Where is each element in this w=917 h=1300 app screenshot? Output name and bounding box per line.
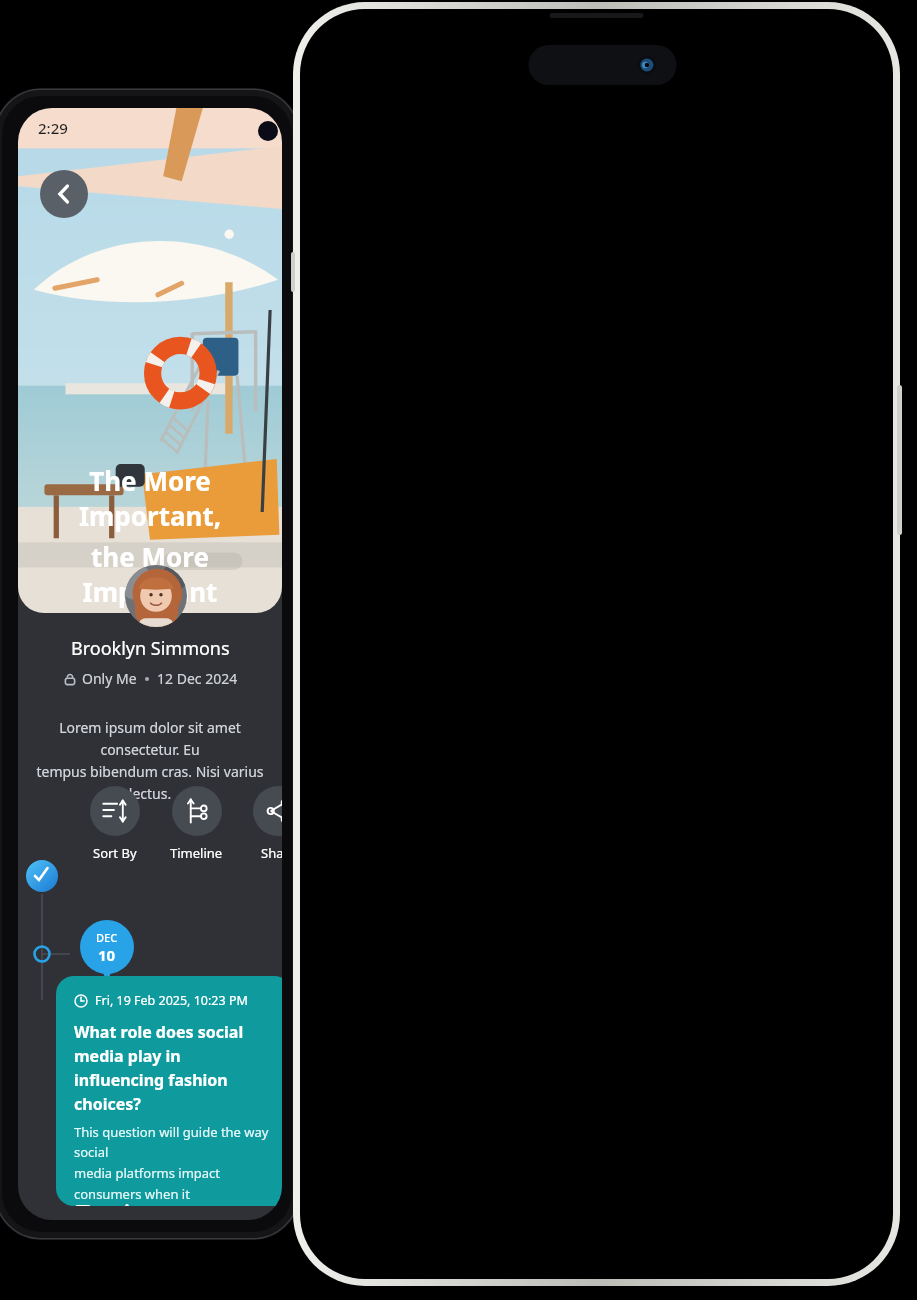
- staticText: 12 Dec 2024: [157, 669, 238, 688]
- staticText: DEC: [96, 930, 118, 945]
- staticText: Only Me: [82, 669, 137, 688]
- staticText: This question will guide the way social …: [74, 1123, 278, 1206]
- staticText: Share: [261, 844, 282, 862]
- button[interactable]: Profile photo: [125, 565, 187, 627]
- staticText: What role does social media play in infl…: [74, 1021, 278, 1115]
- button[interactable]: Fri, 19 Feb 2025, 10:23 PM: [56, 976, 282, 1206]
- button[interactable]: Phone screen: [300, 9, 893, 1279]
- staticText: The More Important,: [28, 463, 272, 533]
- button[interactable]: Share: [253, 786, 282, 862]
- staticText: 2:29: [38, 118, 68, 138]
- button[interactable]: Timeline: [170, 786, 223, 862]
- staticText: Brooklyn Simmons: [71, 636, 230, 661]
- staticText: Lorem ipsum dolor sit amet consectetur. …: [36, 718, 264, 803]
- button[interactable]: Back: [40, 170, 88, 218]
- button[interactable]: Sort By: [90, 786, 140, 862]
- staticText: the More Important: [28, 539, 272, 609]
- staticText: Sort By: [93, 844, 137, 862]
- staticText: 10: [98, 945, 116, 965]
- staticText: Timeline: [170, 844, 223, 862]
- staticText: Fri, 19 Feb 2025, 10:23 PM: [95, 992, 248, 1009]
